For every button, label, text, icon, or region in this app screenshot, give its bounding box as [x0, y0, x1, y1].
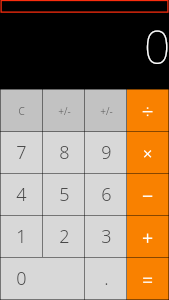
- button[interactable]: 9: [85, 132, 127, 174]
- button[interactable]: +/-: [85, 89, 127, 132]
- staticText: 6: [101, 182, 112, 207]
- button[interactable]: 3: [85, 216, 127, 258]
- staticText: 1: [16, 224, 27, 249]
- staticText: 5: [59, 182, 70, 207]
- staticText: 8: [59, 140, 70, 165]
- button[interactable]: Multiply: [127, 132, 169, 174]
- staticText: 7: [16, 140, 27, 165]
- button[interactable]: Subtract: [127, 174, 169, 216]
- button[interactable]: Add: [127, 216, 169, 258]
- staticText: 2: [59, 224, 70, 249]
- staticText: C: [18, 104, 25, 118]
- button[interactable]: 4: [0, 174, 43, 216]
- button[interactable]: Equals: [127, 258, 169, 300]
- button[interactable]: Divide: [127, 89, 169, 132]
- button[interactable]: .: [85, 258, 127, 300]
- staticText: .: [104, 266, 109, 291]
- button[interactable]: 0: [0, 258, 85, 300]
- staticText: 0: [16, 266, 27, 291]
- staticText: 0: [144, 15, 169, 78]
- button[interactable]: 2: [43, 216, 85, 258]
- button[interactable]: 7: [0, 132, 43, 174]
- staticText: 4: [16, 182, 27, 207]
- button[interactable]: C: [0, 89, 43, 132]
- button[interactable]: 8: [43, 132, 85, 174]
- button[interactable]: 5: [43, 174, 85, 216]
- staticText: +/-: [100, 104, 113, 118]
- staticText: 3: [101, 224, 112, 249]
- button[interactable]: +/-: [43, 89, 85, 132]
- staticText: 9: [101, 140, 112, 165]
- button[interactable]: 1: [0, 216, 43, 258]
- button[interactable]: 6: [85, 174, 127, 216]
- staticText: +/-: [58, 104, 71, 118]
